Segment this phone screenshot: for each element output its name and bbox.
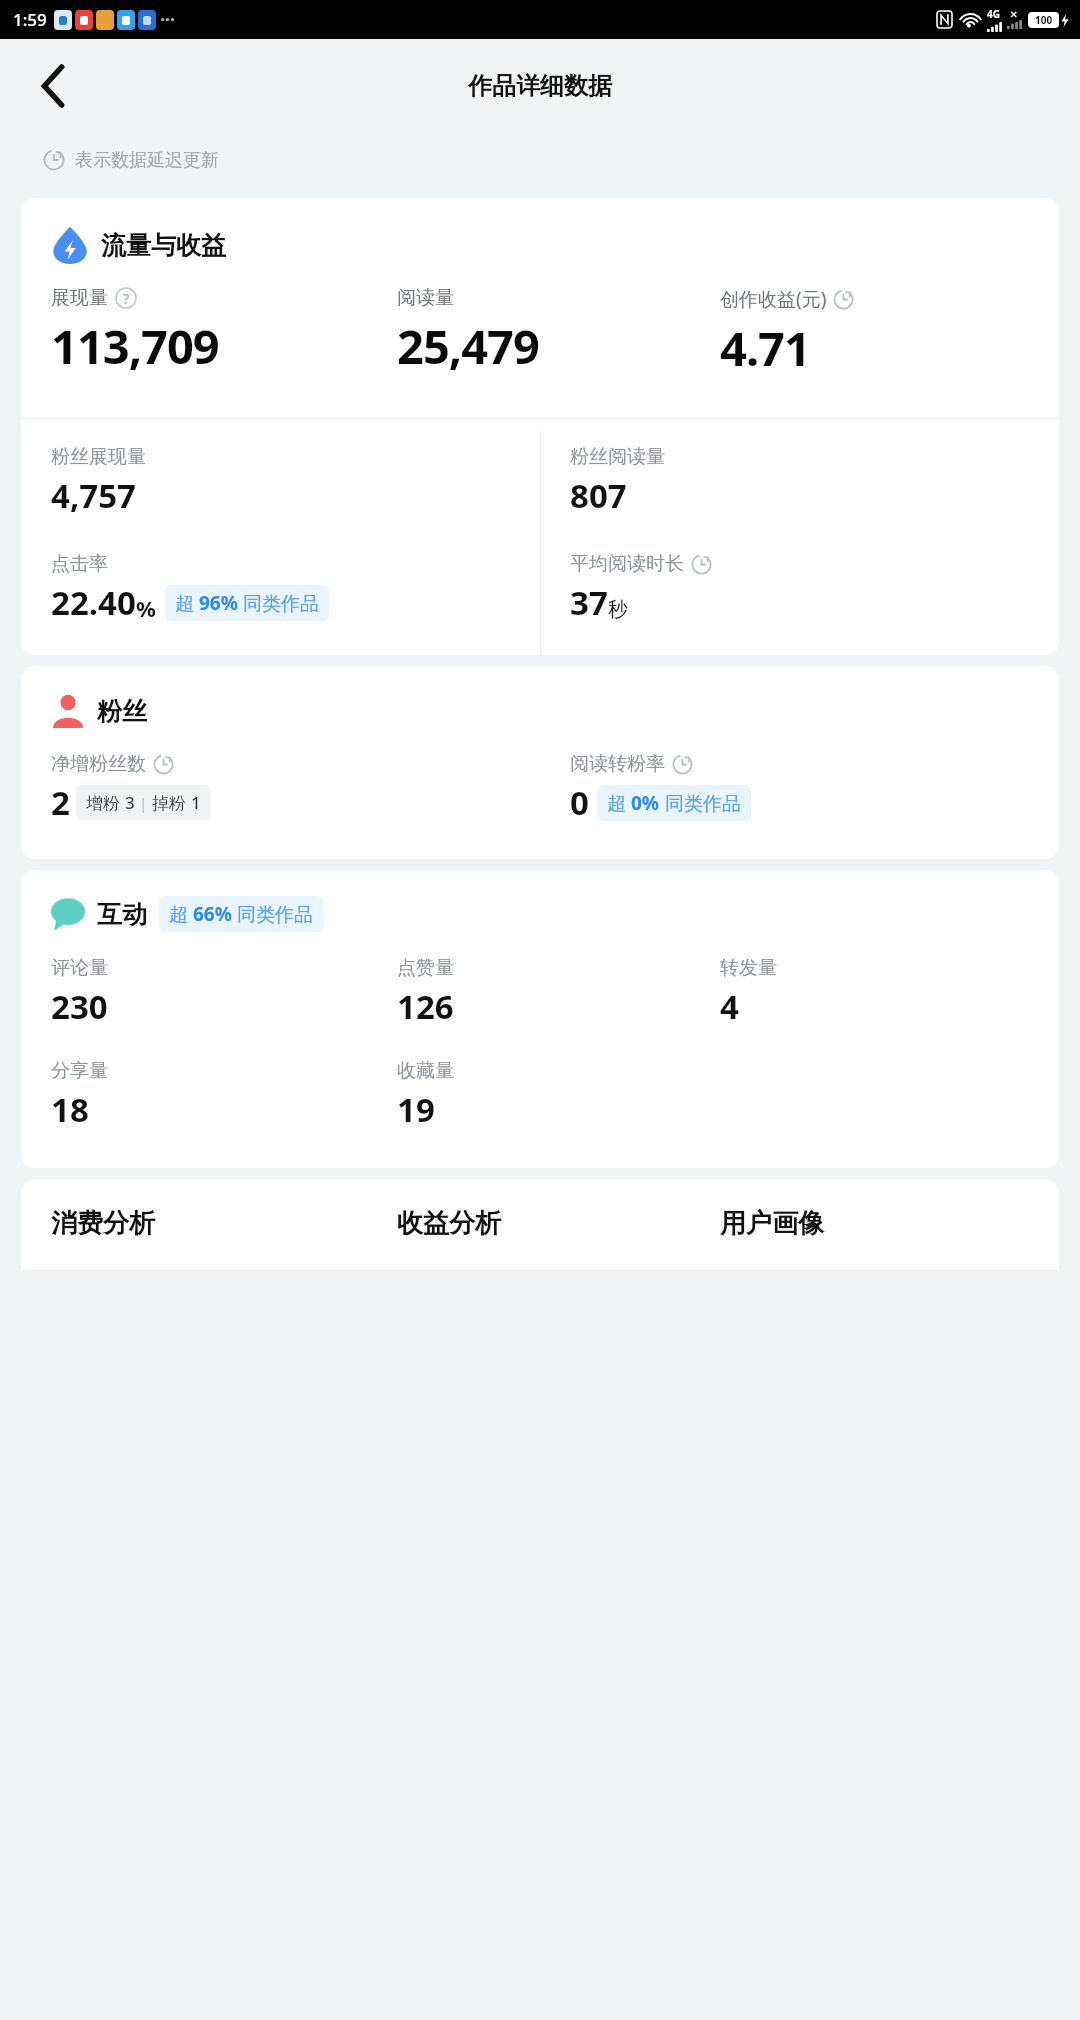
staticText: 互动 [97, 899, 147, 930]
staticText: 收益分析 [397, 1207, 501, 1240]
staticText: 净增粉丝数 [51, 752, 146, 776]
staticText: 同类作品 [232, 901, 313, 927]
staticText: ? [123, 289, 130, 308]
staticText: 流量与收益 [101, 230, 226, 261]
staticText: 0% [631, 790, 660, 816]
button[interactable]: Back [26, 58, 82, 114]
staticText: 秒 [608, 597, 628, 622]
button[interactable]: 超 [159, 896, 323, 932]
button[interactable]: 消费分析 [51, 1207, 397, 1240]
staticText: 转发量 [720, 956, 777, 980]
staticText: 4G [987, 7, 1000, 21]
staticText: 阅读量 [397, 286, 454, 310]
staticText: 分享量 [51, 1059, 108, 1083]
staticText: 4.71 [720, 316, 810, 380]
staticText: 2 [51, 780, 70, 825]
staticText: 807 [570, 473, 627, 518]
staticText: 粉丝展现量 [51, 445, 146, 469]
staticText: 收藏量 [397, 1059, 454, 1083]
button[interactable]: 超 [165, 585, 329, 621]
staticText: 230 [51, 984, 108, 1029]
staticText: 粉丝阅读量 [570, 445, 665, 469]
staticText: 点击率 [51, 552, 108, 576]
staticText: 1:59 [13, 8, 47, 31]
staticText: 粉丝 [97, 696, 147, 727]
staticText: 18 [51, 1087, 89, 1132]
staticText: 消费分析 [51, 1207, 155, 1240]
staticText: 100 [1035, 13, 1053, 27]
staticText: 113,709 [51, 314, 219, 378]
staticText: 1 [191, 791, 201, 814]
button[interactable]: 超 [597, 785, 751, 821]
staticText: 同类作品 [660, 790, 741, 816]
button[interactable]: 收益分析 [397, 1207, 720, 1240]
staticText: 表示数据延迟更新 [75, 149, 219, 172]
staticText: 评论量 [51, 956, 108, 980]
staticText: 用户画像 [720, 1207, 824, 1240]
staticText: 126 [397, 984, 454, 1029]
staticText: 0 [570, 780, 589, 825]
staticText: 超 [175, 590, 199, 616]
staticText: 超 [607, 790, 631, 816]
staticText: 66% [193, 901, 232, 927]
staticText: 96% [199, 590, 238, 616]
staticText: 增粉 [86, 791, 125, 814]
button[interactable]: 用户画像 [720, 1207, 1043, 1240]
staticText: 19 [397, 1087, 435, 1132]
staticText: 22.40 [51, 580, 136, 625]
staticText: 阅读转粉率 [570, 752, 665, 776]
staticText: 展现量 [51, 286, 108, 310]
staticText: % [136, 593, 156, 623]
staticText: | [135, 793, 152, 813]
staticText: 同类作品 [238, 590, 319, 616]
staticText: 4 [720, 984, 739, 1029]
staticText: 超 [169, 901, 193, 927]
staticText: 平均阅读时长 [570, 552, 684, 576]
staticText: 3 [125, 791, 135, 814]
staticText: 25,479 [397, 314, 539, 378]
staticText: 4,757 [51, 473, 136, 518]
staticText: 点赞量 [397, 956, 454, 980]
staticText: 作品详细数据 [468, 71, 612, 101]
staticText: 掉粉 [152, 791, 191, 814]
button[interactable]: 增粉 [76, 785, 211, 820]
staticText: 37 [570, 580, 608, 625]
staticText: 创作收益(元) [720, 286, 827, 312]
